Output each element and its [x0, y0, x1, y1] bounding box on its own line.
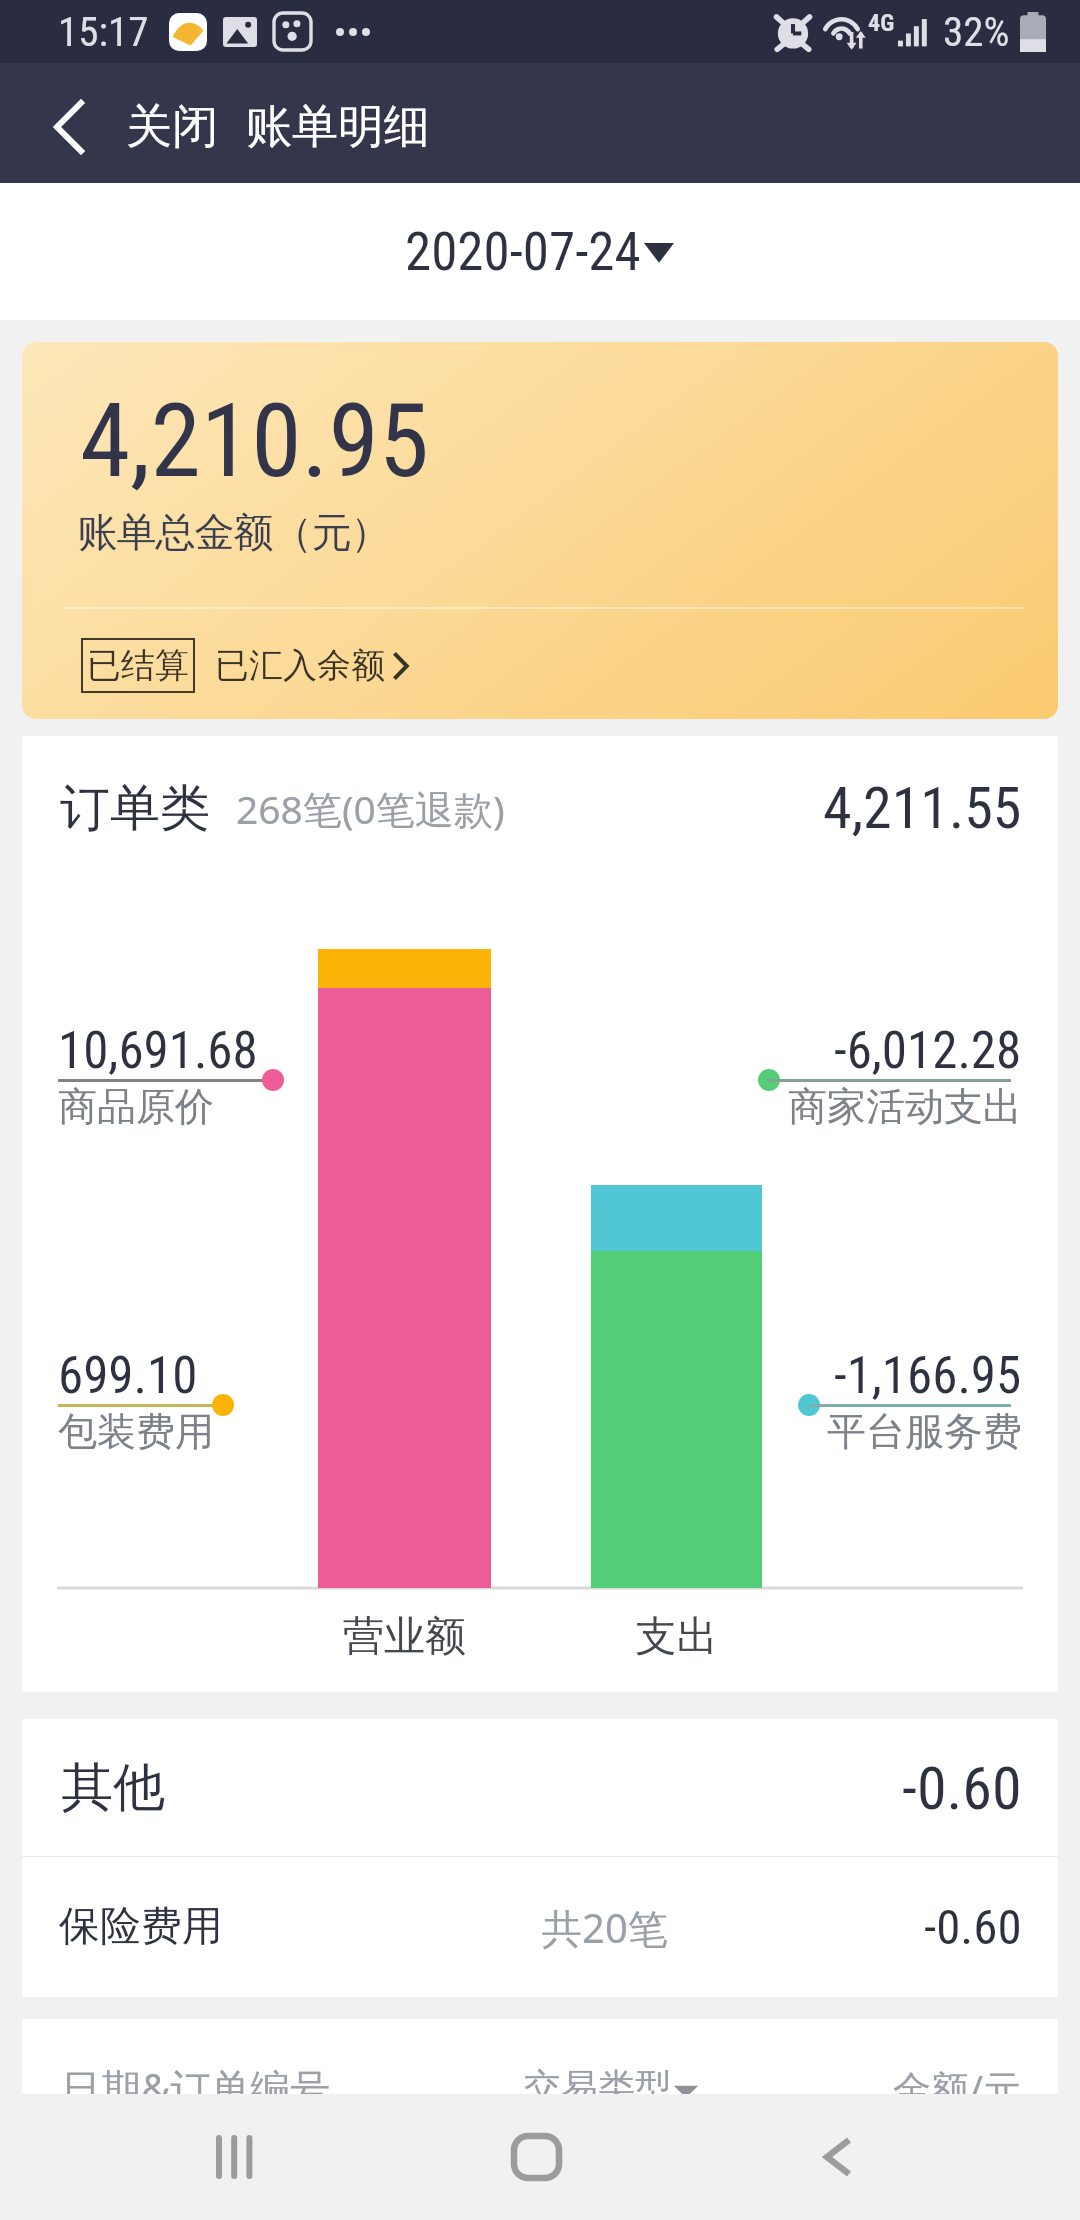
- button[interactable]: Back: [748, 2094, 928, 2220]
- button[interactable]: 2020-07-24: [0, 183, 1080, 320]
- staticText: 账单明细: [246, 98, 430, 156]
- button[interactable]: 保险费用: [22, 1857, 1058, 1997]
- button[interactable]: Home: [446, 2094, 626, 2220]
- button[interactable]: 其他: [22, 1719, 1058, 1856]
- staticText: 支出: [591, 1611, 762, 1663]
- staticText: 金额/元: [893, 2062, 1022, 2094]
- staticText: 包装费用: [58, 1407, 214, 1456]
- staticText: 日期&订单编号: [61, 2060, 331, 2094]
- staticText: -6,012.28: [834, 1021, 1022, 1081]
- staticText: 平台服务费: [827, 1407, 1022, 1456]
- button[interactable]: 订单类: [22, 736, 1058, 858]
- staticText: 已汇入余额: [215, 644, 385, 687]
- staticText: 共20笔: [542, 1900, 668, 1955]
- button[interactable]: Back: [36, 94, 102, 160]
- staticText: 2020-07-24: [405, 221, 641, 283]
- button[interactable]: 已汇入余额: [215, 644, 408, 687]
- staticText: 其他: [61, 1755, 165, 1821]
- staticText: 营业额: [318, 1611, 491, 1663]
- staticText: 4,210.95: [80, 381, 430, 501]
- staticText: 4,211.55: [823, 774, 1022, 842]
- staticText: 32%: [943, 8, 1010, 56]
- staticText: -0.60: [902, 1753, 1022, 1823]
- staticText: -0.60: [924, 1899, 1022, 1956]
- staticText: 账单总金额（元）: [78, 507, 390, 557]
- staticText: 交易类型: [524, 2064, 672, 2094]
- button[interactable]: 关闭: [126, 98, 218, 156]
- button[interactable]: 交易类型: [524, 2064, 700, 2094]
- staticText: 订单类: [60, 777, 210, 840]
- button[interactable]: Recents: [145, 2094, 325, 2220]
- button[interactable]: 4,210.95: [22, 342, 1058, 719]
- staticText: 已结算: [87, 644, 189, 687]
- staticText: 商家活动支出: [788, 1082, 1022, 1131]
- staticText: 保险费用: [59, 1901, 223, 1953]
- staticText: 10,691.68: [58, 1021, 258, 1081]
- staticText: 15:17: [58, 8, 149, 56]
- staticText: 商品原价: [58, 1082, 214, 1131]
- staticText: 4G: [868, 9, 895, 37]
- staticText: -1,166.95: [834, 1346, 1022, 1406]
- staticText: 699.10: [58, 1346, 198, 1406]
- staticText: 268笔(0笔退款): [236, 782, 505, 835]
